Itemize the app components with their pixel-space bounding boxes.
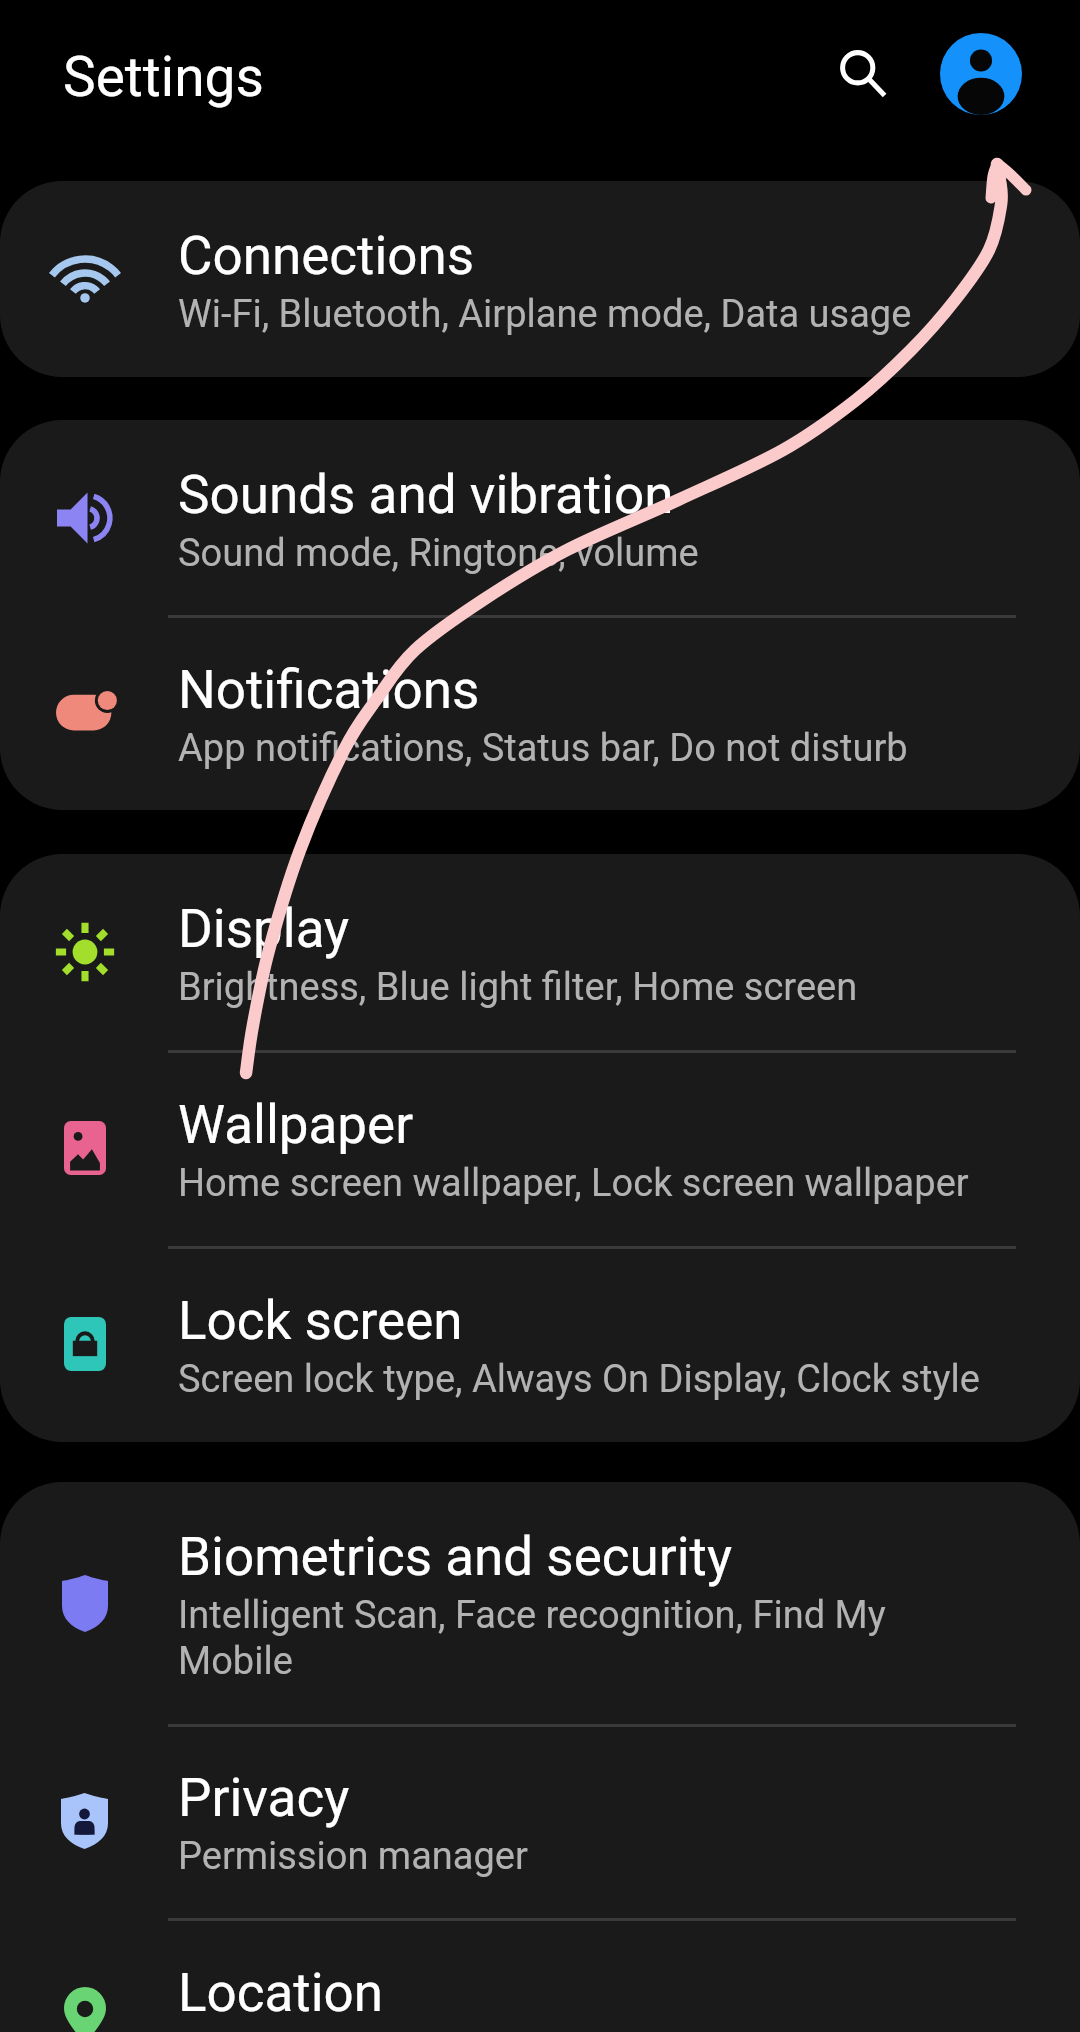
staticText: Permission manager [178,1834,528,1879]
button[interactable]: Notifications [0,615,1080,810]
button[interactable]: Search [803,14,923,134]
button[interactable]: Lock screen [0,1246,1080,1442]
button[interactable]: Location [0,1918,1080,2032]
staticText: Settings [63,45,264,109]
staticText: Sound mode, Ringtone, volume [178,531,699,576]
staticText: Brightness, Blue light filter, Home scre… [178,965,858,1010]
staticText: Screen lock type, Always On Display, Clo… [178,1357,980,1402]
button[interactable]: Display [0,854,1080,1050]
staticText: Notifications [178,659,480,721]
staticText: Privacy [178,1767,350,1829]
button[interactable]: Wallpaper [0,1050,1080,1246]
button[interactable]: Account [921,14,1041,134]
staticText: Wallpaper [178,1094,414,1156]
button[interactable]: Biometrics and security [0,1482,1080,1724]
staticText: Biometrics and security [178,1526,732,1588]
staticText: Display [178,898,350,960]
staticText: Connections [178,225,475,287]
staticText: Home screen wallpaper, Lock screen wallp… [178,1161,969,1206]
staticText: Sounds and vibration [178,464,674,526]
staticText: Lock screen [178,1290,463,1352]
staticText: Wi-Fi, Bluetooth, Airplane mode, Data us… [178,292,912,337]
button[interactable]: Connections [0,181,1080,377]
staticText: Location [178,1962,384,2024]
staticText: Intelligent Scan, Face recognition, Find… [178,1593,992,1684]
button[interactable]: Privacy [0,1724,1080,1918]
button[interactable]: Sounds and vibration [0,420,1080,615]
staticText: App notifications, Status bar, Do not di… [178,726,908,771]
